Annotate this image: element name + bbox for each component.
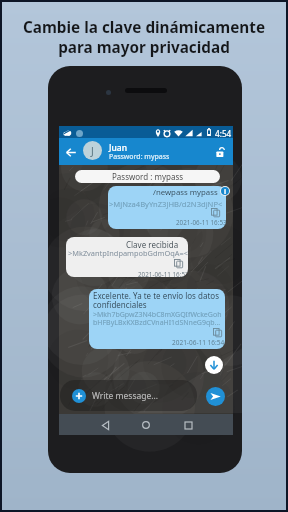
staticText: >MjNza4ByYnZ3JHB/d2N3djNP<	[109, 199, 223, 209]
button[interactable]	[60, 380, 197, 411]
button[interactable]: Back	[92, 415, 118, 435]
staticText: para mayor privacidad	[0, 37, 288, 58]
button[interactable]: Scroll to bottom	[205, 356, 223, 374]
staticText: Juan	[109, 142, 127, 154]
staticText: confidenciales	[93, 299, 147, 310]
staticText: >MkZvantpIndpampobGdmOqA=<	[68, 248, 188, 258]
staticText: bHFByLBxKXBzdCVnaHI1dSNneG9qb...	[93, 318, 221, 328]
staticText: J	[91, 144, 94, 158]
button[interactable]: Send	[206, 387, 225, 406]
button[interactable]: Password : mypass	[75, 170, 220, 183]
staticText: Password: mypass	[109, 152, 170, 162]
staticText: >Mkh7bGpwZ3N4bC8mXGQIfWckeGoh	[93, 310, 222, 320]
staticText: 2021-06-11 16:54	[172, 338, 225, 347]
staticText: 2021-06-11 16:53	[138, 270, 188, 277]
staticText: /newpass mypass	[153, 187, 218, 198]
staticText: Clave recibida	[126, 239, 179, 250]
button[interactable]: Recents	[175, 415, 201, 435]
button[interactable]: /newpass mypass	[108, 186, 226, 229]
staticText: Password : mypass	[112, 171, 184, 182]
staticText: Write message...	[92, 390, 159, 402]
button[interactable]: Home	[133, 415, 159, 435]
staticText: 2021-06-11 16:53	[176, 218, 226, 227]
staticText: 4:54	[215, 128, 232, 139]
button[interactable]: Clave recibida	[66, 237, 188, 277]
button[interactable]: Excelente. Ya te te envío los datos	[89, 289, 225, 349]
button[interactable]: Attach	[72, 389, 86, 403]
staticText: Cambie la clave dinámicamente	[0, 17, 288, 38]
button[interactable]: Back	[61, 143, 80, 162]
staticText: Excelente. Ya te te envío los datos	[93, 290, 219, 301]
staticText: i	[224, 187, 227, 195]
button[interactable]: Unlock	[210, 142, 230, 162]
button[interactable]: Info	[221, 187, 229, 195]
